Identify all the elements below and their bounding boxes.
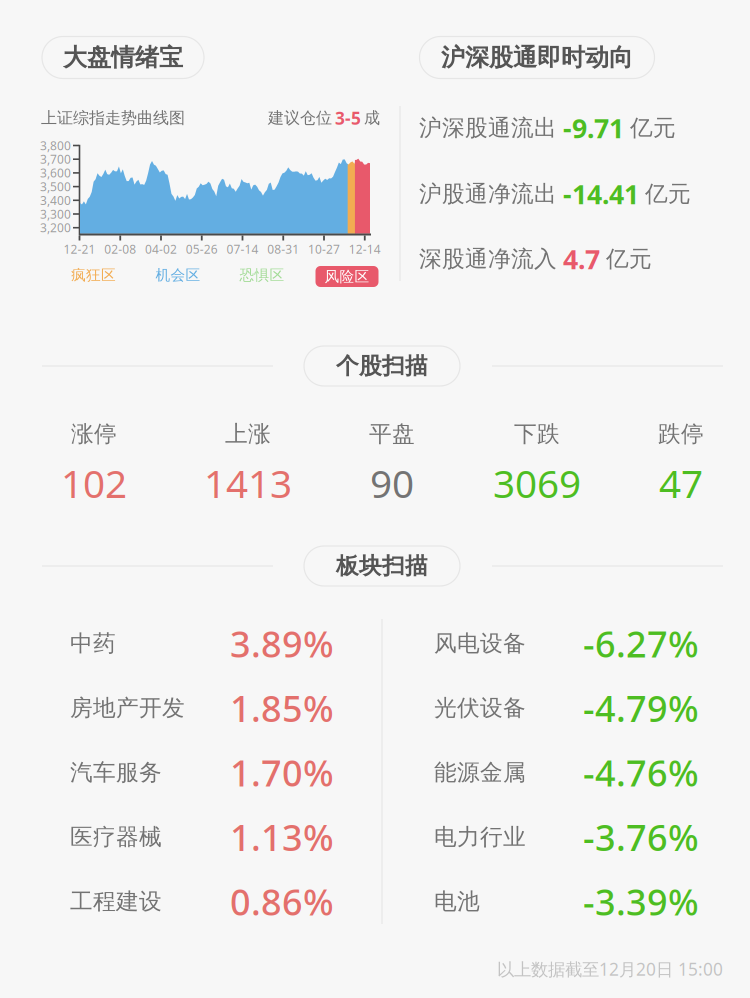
staticText: 1413 <box>204 457 292 509</box>
staticText: 平盘 <box>369 420 415 448</box>
button[interactable]: 个股扫描 <box>304 346 460 386</box>
staticText: 上涨 <box>225 420 271 448</box>
staticText: 板块扫描 <box>336 552 428 580</box>
staticText: 90 <box>370 457 414 509</box>
button[interactable]: 电力行业 <box>434 813 699 861</box>
button[interactable]: 能源金属 <box>434 748 699 796</box>
button[interactable]: 医疗器械 <box>70 813 334 861</box>
staticText: 07-14 <box>226 241 258 257</box>
staticText: -9.71 <box>563 110 624 146</box>
staticText: 3.89% <box>230 619 334 668</box>
button[interactable]: 大盘情绪宝 <box>42 36 204 78</box>
staticText: -3.39% <box>583 877 699 926</box>
staticText: -4.79% <box>583 683 699 732</box>
button[interactable]: 光伏设备 <box>434 684 699 732</box>
staticText: 上证综指走势曲线图 <box>41 108 185 128</box>
staticText: 跌停 <box>658 420 704 448</box>
staticText: -6.27% <box>583 619 699 668</box>
staticText: 12-21 <box>63 241 95 257</box>
staticText: 房地产开发 <box>70 694 185 722</box>
button[interactable]: 恐惧区 <box>231 264 293 286</box>
staticText: 1.70% <box>230 748 334 797</box>
button[interactable]: 板块扫描 <box>304 546 460 586</box>
staticText: 大盘情绪宝 <box>63 42 183 73</box>
staticText: 汽车服务 <box>70 758 162 787</box>
staticText: 下跌 <box>514 420 560 448</box>
staticText: 04-02 <box>145 241 177 257</box>
staticText: 深股通净流入 <box>419 245 557 273</box>
staticText: 3,400 <box>40 192 71 208</box>
staticText: 风险区 <box>324 267 369 286</box>
staticText: 个股扫描 <box>336 352 428 380</box>
button[interactable]: 机会区 <box>147 264 209 286</box>
staticText: 4.7 <box>563 241 600 277</box>
staticText: 建议仓位 <box>268 108 332 128</box>
staticText: 沪股通净流出 <box>419 180 557 208</box>
staticText: 恐惧区 <box>239 266 284 284</box>
button[interactable]: 风险区 <box>315 266 378 287</box>
button[interactable]: 沪深股通即时动向 <box>419 36 654 78</box>
button[interactable]: 电池 <box>434 877 699 925</box>
staticText: 涨停 <box>71 420 117 448</box>
staticText: 亿元 <box>630 114 676 142</box>
staticText: 3,800 <box>40 137 71 154</box>
staticText: 3,600 <box>40 165 71 181</box>
staticText: -3.76% <box>583 812 699 861</box>
staticText: 102 <box>61 457 127 509</box>
staticText: 亿元 <box>606 245 652 273</box>
button[interactable]: 中药 <box>70 619 334 667</box>
staticText: 沪深股通即时动向 <box>441 42 633 73</box>
staticText: 风电设备 <box>434 629 526 658</box>
staticText: 电池 <box>434 887 480 916</box>
staticText: 3069 <box>493 457 581 509</box>
button[interactable]: 风电设备 <box>434 619 699 667</box>
button[interactable]: 汽车服务 <box>70 748 334 796</box>
button[interactable]: 疯狂区 <box>62 264 124 286</box>
staticText: 47 <box>659 457 703 509</box>
staticText: 中药 <box>70 629 116 658</box>
staticText: 3,200 <box>40 219 71 236</box>
staticText: 3-5 <box>335 106 361 130</box>
staticText: -4.76% <box>583 748 699 797</box>
staticText: 工程建设 <box>70 887 162 916</box>
staticText: 3,300 <box>40 206 71 222</box>
staticText: 08-31 <box>267 241 299 257</box>
staticText: 3,700 <box>40 151 71 167</box>
staticText: 机会区 <box>155 266 200 284</box>
staticText: 05-26 <box>186 241 218 257</box>
staticText: 以上数据截至12月20日 15:00 <box>497 957 723 981</box>
button[interactable]: 房地产开发 <box>70 684 334 732</box>
staticText: 0.86% <box>230 877 334 926</box>
staticText: 疯狂区 <box>71 266 116 284</box>
staticText: 1.13% <box>230 812 334 861</box>
staticText: 医疗器械 <box>70 823 162 851</box>
staticText: -14.41 <box>563 176 639 212</box>
staticText: 亿元 <box>645 180 691 208</box>
staticText: 3,500 <box>40 178 71 195</box>
staticText: 沪深股通流出 <box>419 114 557 142</box>
button[interactable]: 工程建设 <box>70 877 334 925</box>
staticText: 能源金属 <box>434 758 526 787</box>
staticText: 10-27 <box>308 241 340 257</box>
staticText: 12-14 <box>349 241 381 257</box>
staticText: 02-08 <box>104 241 136 257</box>
staticText: 成 <box>364 108 380 128</box>
staticText: 电力行业 <box>434 823 526 851</box>
staticText: 光伏设备 <box>434 694 526 722</box>
staticText: 1.85% <box>230 683 334 732</box>
